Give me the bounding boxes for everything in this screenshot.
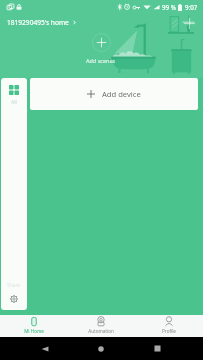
- staticText: Profile: [162, 328, 176, 334]
- button[interactable]: Add scenes: [82, 33, 120, 66]
- staticText: Share: [7, 282, 21, 289]
- other: Settings: [10, 295, 18, 303]
- staticText: 1819290495's home: [7, 18, 69, 27]
- staticText: Automation: [88, 328, 114, 334]
- staticText: Add scenes: [86, 57, 116, 64]
- button[interactable]: Profile: [135, 315, 203, 337]
- button[interactable]: All: [1, 78, 27, 310]
- button[interactable]: 1819290495's home: [7, 18, 77, 27]
- staticText: 9:07: [185, 3, 198, 11]
- button[interactable]: Automation: [67, 315, 135, 337]
- button[interactable]: Back: [41, 345, 49, 353]
- button[interactable]: Mi Home: [0, 315, 67, 337]
- staticText: All: [11, 99, 17, 106]
- button[interactable]: Add: [184, 18, 195, 29]
- button[interactable]: Recents: [154, 345, 161, 352]
- button[interactable]: Add device: [30, 78, 198, 110]
- staticText: 99 %: [162, 3, 176, 11]
- button[interactable]: Home: [98, 346, 104, 352]
- staticText: Mi Home: [24, 328, 44, 334]
- staticText: Add device: [102, 89, 141, 99]
